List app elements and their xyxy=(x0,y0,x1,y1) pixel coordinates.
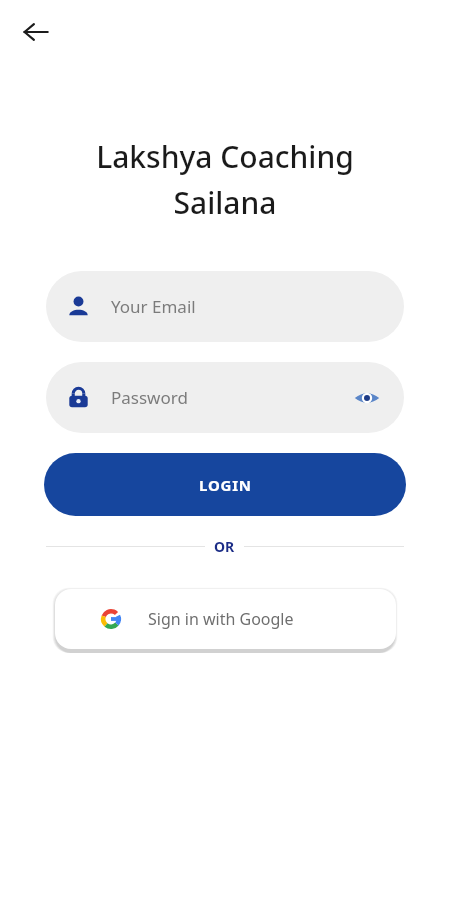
button[interactable]: Back xyxy=(10,6,62,58)
button[interactable]: Show password xyxy=(350,381,384,415)
button[interactable]: Sign in with Google xyxy=(55,589,396,649)
staticText: Lakshya Coaching Sailana xyxy=(24,136,426,223)
button[interactable]: LOGIN xyxy=(44,453,406,516)
button[interactable]: Your Email xyxy=(46,271,404,342)
staticText: Sign in with Google xyxy=(148,608,294,630)
button[interactable]: Password xyxy=(46,362,404,433)
staticText: LOGIN xyxy=(199,475,252,495)
staticText: Password xyxy=(111,386,350,409)
staticText: Your Email xyxy=(111,295,196,318)
staticText: OR xyxy=(214,537,235,556)
